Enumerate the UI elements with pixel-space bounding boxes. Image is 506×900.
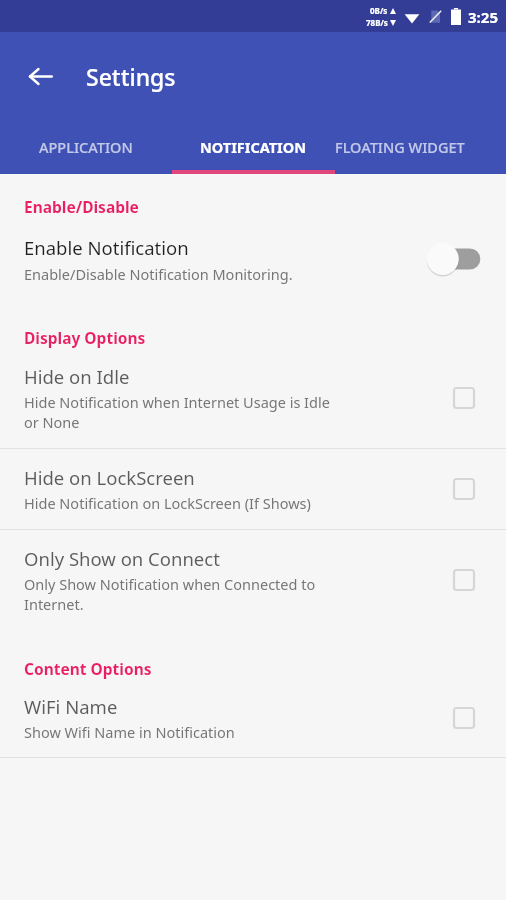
button[interactable]: Enable Notification xyxy=(0,217,506,301)
staticText: 0B/s xyxy=(370,5,388,16)
staticText: Content Options xyxy=(24,658,152,679)
staticText: Settings xyxy=(86,61,176,92)
button[interactable]: Only Show on Connect xyxy=(0,530,506,630)
staticText: Display Options xyxy=(24,327,146,348)
button[interactable]: Back xyxy=(14,50,66,102)
staticText: WiFi Name xyxy=(24,694,118,719)
staticText: Hide on LockScreen xyxy=(24,465,195,490)
staticText: Hide on Idle xyxy=(24,364,130,389)
button[interactable]: Hide on Idle xyxy=(0,348,506,448)
staticText: Only Show Notification when Connected to… xyxy=(24,574,316,614)
button[interactable]: APPLICATION xyxy=(0,120,172,174)
button[interactable]: NOTIFICATION xyxy=(172,120,335,174)
button[interactable]: Only Show on Connect checkbox xyxy=(442,558,486,602)
staticText: Enable/Disable Notification Monitoring. xyxy=(24,264,293,284)
staticText: Only Show on Connect xyxy=(24,546,220,571)
button[interactable]: Hide on LockScreen checkbox xyxy=(442,467,486,511)
button[interactable]: WiFi Name checkbox xyxy=(442,696,486,740)
staticText: Hide Notification on LockScreen (If Show… xyxy=(24,493,311,513)
staticText: FLOATING WIDGET xyxy=(335,137,465,157)
staticText: APPLICATION xyxy=(39,137,133,157)
staticText: Hide Notification when Internet Usage is… xyxy=(24,392,330,432)
staticText: 78B/s xyxy=(366,17,388,28)
staticText: NOTIFICATION xyxy=(200,137,307,157)
staticText: 3:25 xyxy=(468,7,498,27)
button[interactable]: Hide on Idle checkbox xyxy=(442,376,486,420)
button[interactable]: FLOATING WIDGET xyxy=(335,120,506,174)
button[interactable]: Hide on LockScreen xyxy=(0,449,506,529)
button[interactable]: WiFi Name xyxy=(0,679,506,757)
button[interactable]: Enable Notification toggle xyxy=(424,239,484,279)
staticText: Show Wifi Name in Notification xyxy=(24,722,235,742)
staticText: Enable/Disable xyxy=(24,196,139,217)
staticText: Enable Notification xyxy=(24,235,189,260)
